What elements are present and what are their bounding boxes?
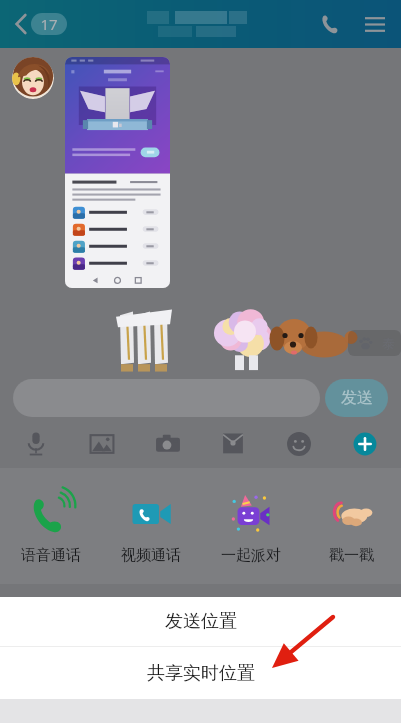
button[interactable]: 戳一戳 <box>301 487 401 571</box>
button[interactable] <box>13 379 320 417</box>
staticText: 发送位置 <box>165 610 237 633</box>
button[interactable]: 泰 <box>348 330 401 356</box>
button[interactable]: 语音通话 <box>0 487 101 571</box>
staticText: 戳一戳 <box>329 546 374 565</box>
staticText: 共享实时位置 <box>147 662 255 685</box>
button[interactable]: 发送位置 <box>0 597 401 646</box>
button[interactable]: 发送 <box>325 379 388 417</box>
staticText: 视频通话 <box>121 546 181 565</box>
staticText: 发送 <box>341 388 373 408</box>
button[interactable]: Photo <box>80 422 124 466</box>
button[interactable]: Voice message <box>14 422 58 466</box>
button[interactable]: 共享实时位置 <box>0 647 401 699</box>
button[interactable]: Camera <box>146 422 190 466</box>
button[interactable]: 一起派对 <box>201 487 301 571</box>
button[interactable]: More <box>343 422 387 466</box>
button[interactable]: Red packet <box>211 422 255 466</box>
button[interactable]: 视频通话 <box>101 487 201 571</box>
staticText: 17 <box>40 14 58 34</box>
button[interactable] <box>65 57 170 288</box>
staticText: 一起派对 <box>221 546 281 565</box>
button[interactable]: Call <box>312 7 347 42</box>
staticText: 语音通话 <box>21 546 81 565</box>
button[interactable]: Menu <box>357 9 393 40</box>
button[interactable]: Sticker <box>277 422 321 466</box>
button[interactable]: Back, 17 unread <box>10 7 73 41</box>
button[interactable] <box>12 57 54 99</box>
